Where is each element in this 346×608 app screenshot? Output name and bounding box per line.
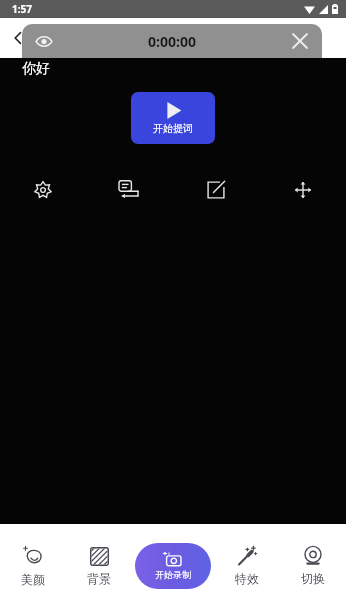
staticText: 你好 — [22, 60, 50, 78]
button[interactable]: 特效 — [214, 536, 280, 596]
staticText: 0:00:00 — [148, 32, 196, 51]
button[interactable]: Teleprompter text — [86, 170, 172, 210]
staticText: 背景 — [87, 571, 111, 586]
button[interactable]: Edit — [172, 170, 259, 210]
button[interactable]: Preview — [30, 27, 58, 55]
button[interactable]: Back — [6, 26, 30, 50]
button[interactable]: Settings — [0, 170, 86, 210]
button[interactable]: Close — [286, 27, 314, 55]
staticText: 切换 — [301, 571, 325, 586]
button[interactable]: 美颜 — [0, 536, 66, 596]
staticText: 1:57 — [12, 2, 32, 16]
button[interactable]: Move — [259, 170, 346, 210]
button[interactable]: 开始提词 — [131, 92, 215, 144]
staticText: 开始录制 — [155, 569, 191, 580]
button[interactable]: 背景 — [66, 536, 132, 596]
button[interactable]: 开始录制 — [135, 543, 211, 589]
staticText: 美颜 — [21, 572, 45, 587]
button[interactable]: 切换 — [280, 536, 346, 596]
staticText: 特效 — [235, 571, 259, 586]
staticText: 开始提词 — [153, 122, 193, 135]
